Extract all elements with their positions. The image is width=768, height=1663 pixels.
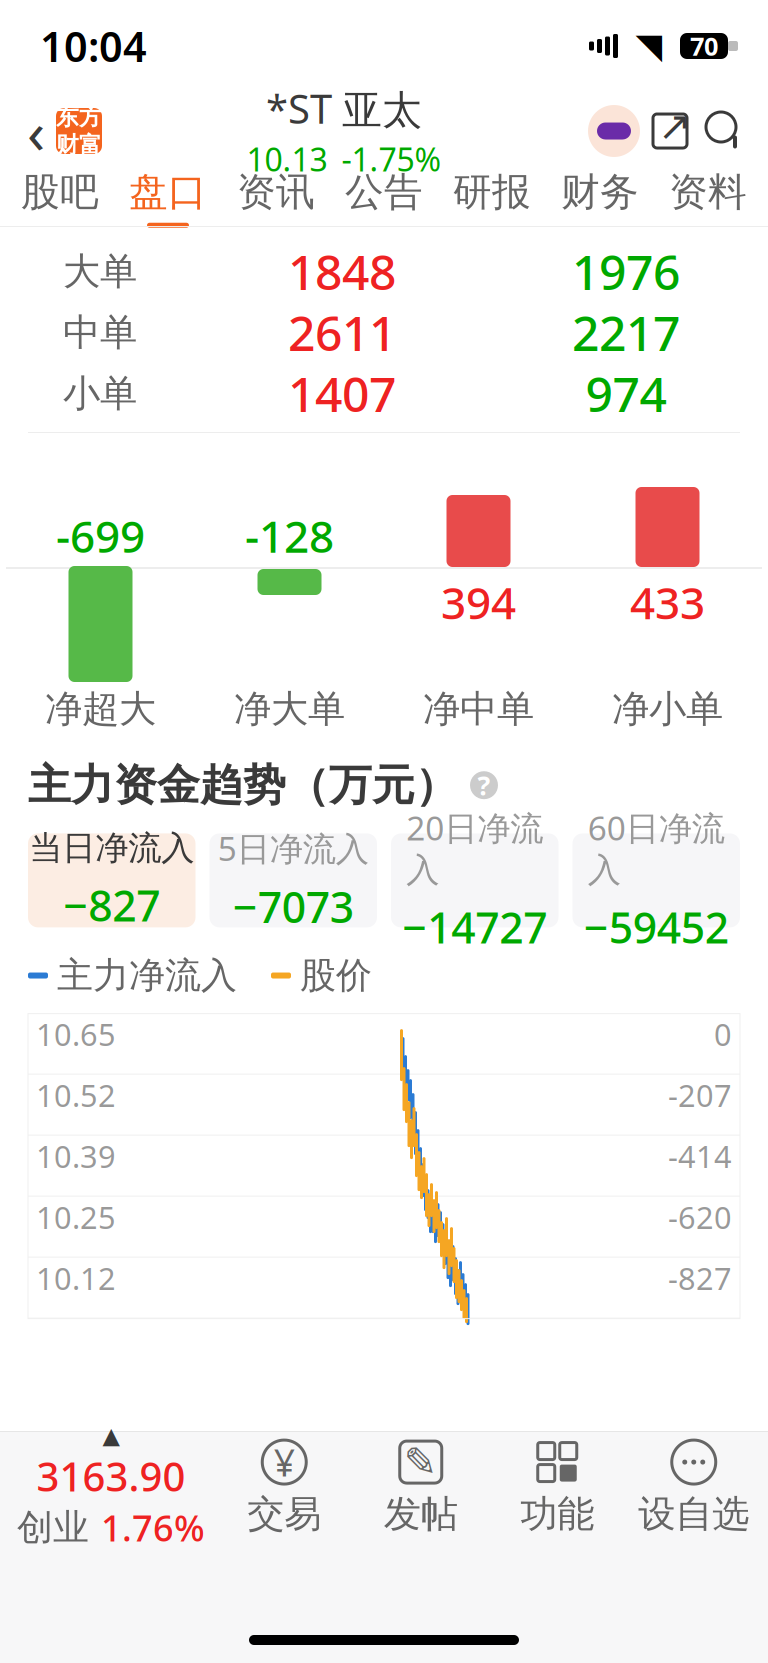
staticText: 10.25: [36, 1197, 116, 1237]
staticText: 交易: [247, 1491, 321, 1537]
button[interactable]: 公告: [330, 170, 438, 226]
button[interactable]: ✎: [352, 1432, 489, 1542]
button[interactable]: Search: [698, 103, 752, 159]
staticText: 1848: [288, 240, 396, 303]
staticText: 创业: [17, 1505, 89, 1549]
staticText: 当日净流入: [29, 828, 194, 868]
staticText: 10:04: [40, 19, 147, 73]
staticText: 功能: [520, 1491, 594, 1537]
staticText: 2217: [572, 301, 680, 364]
staticText: 3163.90: [36, 1449, 185, 1502]
staticText: ?: [477, 767, 490, 803]
staticText: -128: [245, 507, 334, 565]
staticText: 1407: [288, 362, 396, 425]
button[interactable]: 60日净流入: [572, 833, 740, 927]
staticText: 发帖: [384, 1491, 458, 1537]
staticText: 研报: [453, 168, 531, 216]
staticText: 5日净流入: [218, 826, 369, 870]
staticText: 2611: [288, 301, 396, 364]
button[interactable]: 股吧: [6, 170, 114, 226]
staticText: -414: [668, 1136, 732, 1176]
staticText: 净大单: [234, 686, 345, 732]
staticText: −827: [63, 876, 160, 933]
staticText: 净小单: [612, 686, 723, 732]
button[interactable]: 5日净流入: [209, 833, 377, 927]
staticText: 20日净流入: [406, 805, 543, 891]
button[interactable]: 财务: [546, 170, 654, 226]
staticText: -207: [668, 1075, 732, 1115]
button[interactable]: 设自选: [625, 1432, 762, 1542]
staticText: 资讯: [237, 168, 315, 216]
button[interactable]: 东方财富: [56, 108, 102, 154]
staticText: 主力资金趋势（万元）: [28, 759, 458, 811]
staticText: -1.75%: [341, 138, 441, 180]
button[interactable]: 20日净流入: [391, 833, 558, 927]
button[interactable]: ¥: [216, 1432, 352, 1542]
staticText: *ST 亚太: [266, 82, 422, 135]
staticText: ‹: [27, 92, 45, 170]
staticText: 设自选: [638, 1491, 749, 1537]
staticText: −7073: [233, 878, 354, 935]
staticText: ▲: [102, 1423, 119, 1448]
staticText: 小单: [63, 371, 137, 416]
staticText: 股价: [300, 953, 372, 998]
button[interactable]: 当日净流入: [28, 833, 195, 927]
button[interactable]: Back: [16, 101, 56, 161]
staticText: 10.13: [246, 138, 327, 180]
staticText: 60日净流入: [588, 805, 725, 891]
staticText: −59452: [584, 899, 729, 955]
staticText: ↗: [658, 103, 692, 149]
staticText: 股吧: [21, 168, 99, 216]
staticText: 433: [630, 573, 705, 631]
button[interactable]: 资料: [654, 170, 762, 226]
staticText: 0: [714, 1014, 732, 1054]
staticText: 10.52: [36, 1075, 116, 1115]
staticText: ¥: [274, 1437, 295, 1487]
staticText: ◥: [635, 26, 662, 66]
staticText: 东方: [56, 103, 102, 131]
staticText: ✎: [404, 1439, 438, 1485]
button[interactable]: Share: [642, 103, 698, 159]
staticText: 净超大: [45, 686, 156, 732]
staticText: 10.12: [36, 1258, 116, 1298]
staticText: 大单: [63, 249, 137, 294]
staticText: 70: [690, 29, 718, 63]
staticText: 财务: [561, 168, 639, 216]
staticText: −14727: [402, 899, 547, 955]
staticText: -620: [668, 1197, 732, 1237]
staticText: 10.39: [36, 1136, 116, 1176]
staticText: -699: [56, 507, 145, 565]
staticText: 盘口: [129, 168, 207, 216]
staticText: 主力净流入: [57, 953, 237, 998]
staticText: 974: [585, 362, 666, 425]
button[interactable]: ▲: [6, 1432, 216, 1542]
button[interactable]: 资讯: [222, 170, 330, 226]
staticText: 资料: [669, 168, 747, 216]
button[interactable]: 研报: [438, 170, 546, 226]
button[interactable]: 功能: [489, 1432, 625, 1542]
staticText: -827: [668, 1258, 732, 1298]
staticText: 10.65: [36, 1014, 116, 1054]
staticText: 财富: [56, 131, 102, 159]
staticText: 1976: [572, 240, 680, 303]
staticText: 394: [441, 573, 516, 631]
staticText: 中单: [63, 310, 137, 355]
button[interactable]: 盘口: [114, 170, 222, 226]
staticText: 1.76%: [101, 1503, 205, 1551]
button[interactable]: AI assistant: [586, 103, 642, 159]
staticText: 公告: [345, 168, 423, 216]
staticText: 净中单: [423, 686, 534, 732]
